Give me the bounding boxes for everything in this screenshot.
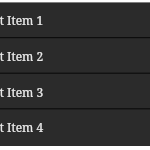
- staticText: List Item 3: [0, 84, 44, 100]
- button[interactable]: List Item 1: [0, 2, 150, 37]
- staticText: List Item 1: [0, 12, 44, 28]
- staticText: List Item 2: [0, 48, 44, 64]
- staticText: List Item 4: [0, 119, 44, 135]
- button[interactable]: List Item 4: [0, 109, 150, 144]
- button[interactable]: List Item 3: [0, 74, 150, 109]
- button[interactable]: List Item 2: [0, 38, 150, 73]
